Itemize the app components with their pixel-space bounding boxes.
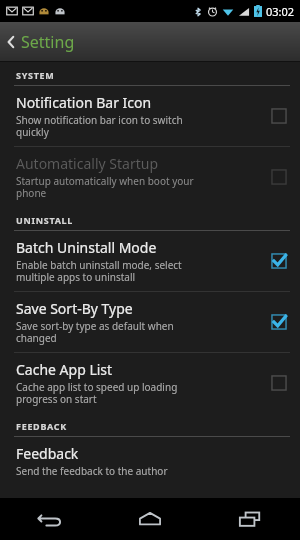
button[interactable]: Recent apps — [200, 498, 300, 540]
staticText: Save sort-by type as default when change… — [16, 319, 174, 345]
staticText: SYSTEM — [16, 69, 55, 81]
staticText: Startup automatically when boot your pho… — [16, 174, 194, 200]
button[interactable]: Feedback — [0, 437, 300, 485]
staticText: Cache app list to speed up loading progr… — [16, 380, 178, 406]
staticText: Show notification bar icon to switch qui… — [16, 113, 183, 139]
staticText: Save Sort-By Type — [16, 299, 133, 318]
staticText: UNINSTALL — [16, 214, 74, 226]
button[interactable]: Cache App List — [0, 353, 300, 413]
button[interactable]: Checked — [268, 250, 290, 272]
staticText: FEEDBACK — [16, 420, 67, 432]
button[interactable]: Unchecked — [268, 372, 290, 394]
staticText: 03:02 — [266, 4, 295, 19]
staticText: Enable batch uninstall mode, select mult… — [16, 258, 182, 284]
button[interactable]: Notification Bar Icon — [0, 86, 300, 146]
button[interactable]: Save Sort-By Type — [0, 292, 300, 352]
button[interactable]: Back — [0, 498, 100, 540]
staticText: Feedback — [16, 444, 79, 463]
staticText: Cache App List — [16, 360, 113, 379]
staticText: Setting — [21, 31, 75, 53]
staticText: Automatically Startup — [16, 154, 159, 173]
button[interactable]: Automatically Startup — [0, 147, 300, 207]
button[interactable]: Checked — [268, 311, 290, 333]
button[interactable]: Unchecked — [268, 166, 290, 188]
staticText: Send the feedback to the author — [16, 464, 168, 478]
button[interactable]: Back to previous screen — [0, 22, 300, 62]
button[interactable]: Batch Uninstall Mode — [0, 231, 300, 291]
staticText: Batch Uninstall Mode — [16, 238, 157, 257]
button[interactable]: Home — [100, 498, 200, 540]
staticText: Notification Bar Icon — [16, 93, 152, 112]
button[interactable]: Unchecked — [268, 105, 290, 127]
